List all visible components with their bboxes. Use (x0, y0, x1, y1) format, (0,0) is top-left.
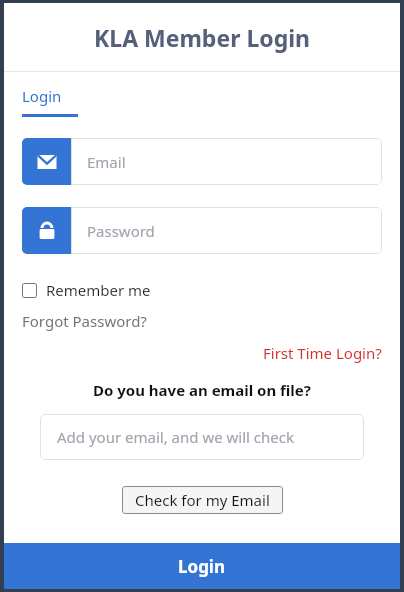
staticText: First Time Login? (263, 343, 382, 363)
button[interactable]: Email (22, 138, 382, 185)
staticText: Remember me (46, 280, 151, 300)
other: Password (22, 207, 71, 254)
button[interactable]: Add your email, and we will check (40, 414, 364, 460)
staticText: Forgot Password? (22, 311, 147, 331)
staticText: Add your email, and we will check (57, 427, 294, 447)
button[interactable]: Forgot Password? (22, 311, 147, 331)
staticText: Check for my Email (135, 490, 270, 510)
other: Email (22, 138, 71, 185)
staticText: Do you have an email on file? (93, 380, 311, 400)
button[interactable]: Remember me (22, 280, 151, 300)
staticText: KLA Member Login (94, 22, 310, 53)
staticText: Email (87, 152, 126, 172)
staticText: Login (22, 86, 62, 106)
button[interactable]: First Time Login? (263, 343, 382, 363)
button[interactable]: Login (4, 543, 400, 589)
button[interactable]: Login (22, 86, 78, 117)
button[interactable]: Check for my Email (122, 486, 283, 514)
staticText: Login (178, 555, 226, 578)
button[interactable]: Password (22, 207, 382, 254)
staticText: Password (87, 221, 155, 241)
